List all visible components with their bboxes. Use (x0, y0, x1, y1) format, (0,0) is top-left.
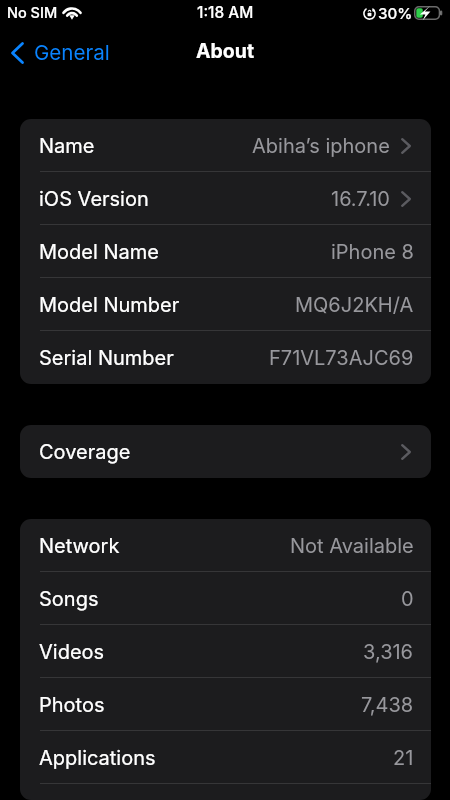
staticText: Not Available (290, 534, 414, 558)
staticText: Serial Number (39, 346, 174, 370)
staticText: iPhone 8 (331, 240, 414, 264)
staticText: Photos (39, 693, 105, 717)
button[interactable]: Model Number (20, 278, 431, 331)
button[interactable]: Songs (20, 572, 431, 625)
staticText: 30% (378, 4, 413, 22)
staticText: Songs (39, 587, 99, 611)
button[interactable]: iOS Version (20, 172, 431, 225)
button[interactable]: Photos (20, 678, 431, 731)
staticText: No SIM (7, 4, 58, 22)
staticText: Model Number (39, 293, 180, 317)
staticText: Network (39, 534, 120, 558)
staticText: 0 (401, 587, 414, 611)
button[interactable]: Network (20, 519, 431, 572)
button[interactable]: Applications (20, 731, 431, 784)
staticText: 21 (393, 746, 414, 770)
staticText: MQ6J2KH/A (295, 293, 414, 317)
button[interactable]: Model Name (20, 225, 431, 278)
staticText: 7,438 (361, 693, 414, 717)
button[interactable]: Serial Number (20, 331, 431, 384)
staticText: Name (39, 134, 95, 158)
staticText: 16.7.10 (331, 187, 390, 211)
button[interactable]: Name (20, 119, 431, 172)
staticText: Abiha’s iphone (252, 134, 390, 158)
staticText: Model Name (39, 240, 159, 264)
staticText: General (34, 40, 110, 65)
staticText: Applications (39, 746, 156, 770)
staticText: 3,316 (363, 640, 414, 664)
button[interactable]: Coverage (20, 425, 431, 478)
button[interactable]: Videos (20, 625, 431, 678)
staticText: Videos (39, 640, 105, 664)
staticText: 1:18 AM (197, 3, 254, 22)
staticText: About (196, 39, 255, 63)
staticText: F71VL73AJC69 (269, 346, 414, 370)
button[interactable]: Back to General (2, 40, 116, 65)
staticText: iOS Version (39, 187, 149, 211)
staticText: Coverage (39, 440, 131, 464)
